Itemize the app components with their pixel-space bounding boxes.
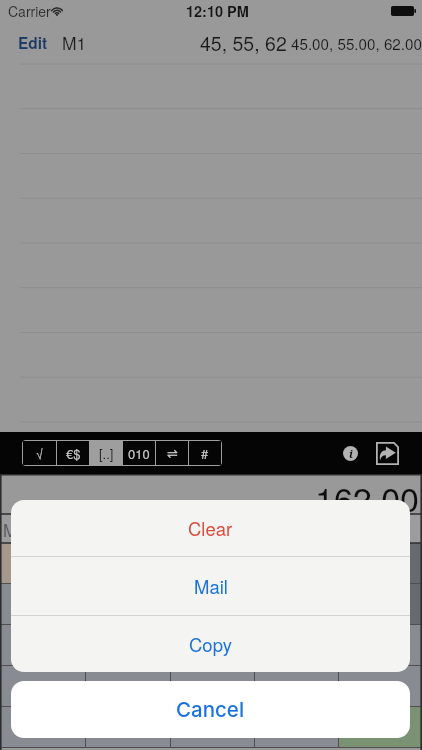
button[interactable] bbox=[85, 584, 170, 625]
button[interactable] bbox=[338, 707, 422, 748]
button[interactable] bbox=[338, 584, 422, 625]
button[interactable]: Share bbox=[374, 440, 400, 466]
button[interactable] bbox=[170, 707, 254, 748]
button[interactable] bbox=[0, 707, 85, 748]
button[interactable] bbox=[338, 543, 422, 584]
button[interactable]: √ bbox=[23, 441, 56, 465]
button[interactable] bbox=[254, 707, 338, 748]
staticText: 45, 55, 62 bbox=[200, 29, 287, 56]
button[interactable] bbox=[0, 625, 85, 666]
button[interactable]: Edit bbox=[18, 32, 48, 53]
button[interactable]: # bbox=[189, 441, 221, 465]
button[interactable]: Cancel bbox=[11, 681, 410, 738]
staticText: Cancel bbox=[176, 697, 245, 722]
button[interactable] bbox=[170, 666, 254, 707]
button[interactable]: ⇌ bbox=[156, 441, 188, 465]
staticText: 45.00, 55.00, 62.00 bbox=[291, 33, 422, 55]
button[interactable] bbox=[0, 543, 85, 584]
staticText: M bbox=[3, 517, 18, 541]
button[interactable] bbox=[0, 584, 85, 625]
staticText: Mail bbox=[194, 573, 228, 599]
button[interactable] bbox=[0, 666, 85, 707]
staticText: # bbox=[201, 444, 209, 463]
button[interactable]: Clear bbox=[11, 500, 410, 556]
button[interactable] bbox=[254, 584, 338, 625]
staticText: ⇌ bbox=[167, 446, 178, 461]
button[interactable]: [..] bbox=[90, 441, 122, 465]
button[interactable]: M bbox=[0, 514, 85, 543]
staticText: m+ bbox=[173, 517, 198, 541]
button[interactable]: 010 bbox=[123, 441, 155, 465]
button[interactable] bbox=[170, 543, 254, 584]
staticText: 010 bbox=[128, 444, 150, 463]
button[interactable]: Info bbox=[334, 437, 366, 469]
button[interactable] bbox=[85, 666, 170, 707]
button[interactable]: mr bbox=[338, 514, 422, 543]
button[interactable]: €$ bbox=[57, 441, 89, 465]
staticText: €$ bbox=[66, 444, 81, 463]
button[interactable] bbox=[170, 625, 254, 666]
staticText: Clear bbox=[188, 515, 233, 541]
button[interactable] bbox=[338, 625, 422, 666]
button[interactable]: Mail bbox=[11, 557, 410, 615]
staticText: M1 bbox=[62, 30, 87, 55]
button[interactable] bbox=[338, 666, 422, 707]
button[interactable] bbox=[85, 543, 170, 584]
staticText: Carrier bbox=[8, 1, 51, 21]
button[interactable] bbox=[254, 666, 338, 707]
button[interactable] bbox=[85, 707, 170, 748]
staticText: i bbox=[349, 446, 353, 461]
button[interactable] bbox=[170, 584, 254, 625]
staticText: Edit bbox=[18, 32, 48, 53]
button[interactable]: Copy bbox=[11, 616, 410, 672]
button[interactable] bbox=[254, 543, 338, 584]
button[interactable]: m+ bbox=[170, 514, 254, 543]
staticText: 12:10 PM bbox=[186, 1, 249, 22]
staticText: Copy bbox=[189, 631, 232, 657]
staticText: √ bbox=[36, 444, 44, 463]
staticText: [..] bbox=[99, 444, 114, 463]
staticText: 162.00 bbox=[315, 473, 419, 513]
